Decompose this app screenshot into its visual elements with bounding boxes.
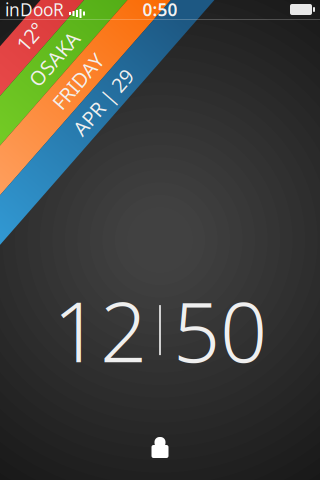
staticText: OSAKA — [33, 37, 98, 64]
staticText: 12° — [51, 5, 82, 31]
staticText: 12 — [53, 275, 147, 385]
staticText: 50 — [173, 275, 267, 385]
staticText: 0:50 — [142, 0, 177, 21]
staticText: inDooR — [5, 0, 64, 21]
staticText: FRIDAY — [31, 70, 97, 97]
staticText: APR | 29 — [25, 103, 105, 129]
